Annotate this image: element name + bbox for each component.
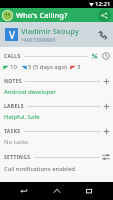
button[interactable]: Android developer [0, 86, 113, 98]
staticText: 5 (5 days ago) [28, 63, 67, 71]
staticText: Who's Calling? [16, 10, 68, 20]
staticText: No tasks [4, 138, 29, 146]
button[interactable]: Settings [100, 151, 112, 163]
button[interactable]: Share [98, 9, 111, 22]
staticText: TASKS [4, 128, 21, 135]
button[interactable]: Back [16, 183, 32, 199]
staticText: +40072999043 [21, 37, 56, 44]
button[interactable]: CALLS [0, 50, 113, 62]
staticText: SETTINGS [4, 154, 31, 161]
staticText: Vladimir Skoupy [21, 26, 79, 36]
staticText: NOTES [4, 78, 22, 85]
button[interactable]: Home [49, 183, 65, 199]
staticText: LABELS [4, 103, 24, 110]
button[interactable]: Add TASKS [100, 125, 112, 137]
staticText: 3 [77, 63, 81, 71]
button[interactable]: Helpful, Safe [0, 111, 113, 123]
button[interactable]: SETTINGS [0, 151, 113, 163]
staticText: Call notifications enabled [4, 165, 75, 173]
button[interactable]: No tasks [0, 136, 113, 148]
button[interactable]: Add LABELS [100, 100, 112, 112]
button[interactable]: Call [93, 26, 111, 44]
staticText: Helpful, Safe [4, 113, 40, 121]
staticText: Android developer [4, 88, 57, 96]
button[interactable]: LABELS [0, 100, 113, 112]
button[interactable]: NOTES [0, 75, 113, 87]
button[interactable]: Filter calls [88, 50, 100, 62]
button[interactable]: Add NOTES [100, 75, 112, 87]
staticText: CALLS [4, 53, 21, 60]
staticText: V [9, 28, 15, 41]
staticText: 12:21 [95, 0, 111, 8]
button[interactable]: Recents [81, 183, 97, 199]
button[interactable]: 10 [0, 61, 113, 73]
staticText: 10 [10, 63, 17, 71]
button[interactable]: TASKS [0, 125, 113, 137]
button[interactable]: V [0, 22, 113, 47]
button[interactable]: Call history [100, 50, 112, 62]
button[interactable]: Call notifications enabled [0, 163, 113, 175]
